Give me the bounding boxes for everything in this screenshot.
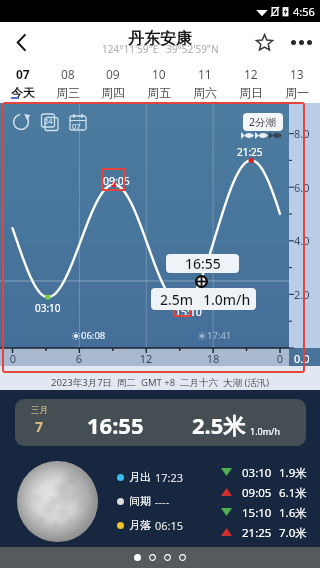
staticText: 1.0m/h (250, 425, 281, 437)
staticText: 2.0 (294, 287, 310, 302)
button[interactable]: 03:10 (221, 465, 307, 479)
staticText: 09 (106, 66, 120, 82)
staticText: 03:10 (242, 465, 272, 479)
staticText: 2023年3月7日 周二 GMT +8 二月十六 大潮 (活汛) (51, 376, 270, 389)
button[interactable] (179, 554, 186, 561)
button[interactable]: 三月 (15, 399, 306, 446)
staticText: 0.0 (294, 351, 310, 366)
button[interactable]: 16:55 (166, 254, 239, 273)
staticText: 周日 (239, 85, 263, 100)
button[interactable] (149, 554, 156, 561)
staticText: 10 (152, 66, 166, 82)
staticText: 周一 (285, 85, 309, 100)
staticText: 1.9米 (279, 465, 307, 479)
staticText: 11 (198, 66, 212, 82)
button[interactable]: 10 (136, 66, 182, 103)
staticText: 6.1米 (279, 485, 307, 499)
staticText: 06:08 (81, 329, 106, 342)
staticText: 0 (268, 351, 292, 366)
button[interactable] (164, 554, 171, 561)
staticText: 4:56 (293, 4, 315, 19)
staticText: 15:10 (175, 305, 202, 319)
staticText: 21:25 (237, 145, 263, 159)
staticText: 周三 (56, 85, 80, 100)
staticText: 16:55 (185, 254, 221, 273)
staticText: 2.5m (160, 290, 194, 309)
button[interactable]: 月落 (117, 518, 184, 532)
staticText: 周六 (193, 85, 217, 100)
button[interactable]: 08 (45, 66, 90, 103)
staticText: 07 (16, 66, 30, 82)
staticText: 06:15 (155, 518, 184, 532)
staticText: 08 (61, 66, 75, 82)
staticText: 丹东安康 (128, 29, 192, 49)
staticText: 2分潮 (249, 115, 277, 129)
staticText: 0 (1, 351, 25, 366)
staticText: 2.5米 (192, 410, 246, 440)
button[interactable]: Calendar (68, 112, 88, 132)
staticText: 1.6米 (279, 505, 307, 519)
staticText: 03:10 (35, 301, 61, 315)
staticText: 12 (244, 66, 258, 82)
staticText: 4.0 (294, 233, 310, 248)
staticText: 月落 (129, 518, 151, 532)
staticText: ---- (155, 494, 170, 508)
button[interactable]: Refresh (11, 112, 31, 132)
staticText: 13 (290, 66, 304, 82)
button[interactable]: 09 (90, 66, 136, 103)
button[interactable]: More options (282, 22, 320, 62)
staticText: 24 (44, 116, 53, 126)
staticText: 三月 (31, 405, 48, 416)
button[interactable]: 11 (182, 66, 228, 103)
staticText: 6.0 (294, 180, 310, 195)
button[interactable]: 24 hour view (40, 112, 60, 132)
button[interactable]: 15:10 (221, 505, 307, 519)
button[interactable]: 12 (228, 66, 274, 103)
staticText: 7 (35, 417, 44, 436)
staticText: 17:41 (207, 329, 232, 342)
staticText: 6 (67, 351, 91, 366)
staticText: 1.0m/h (203, 290, 251, 309)
staticText: 7.0米 (279, 525, 307, 539)
staticText: 16:55 (87, 410, 144, 440)
button[interactable]: 2分潮 (243, 113, 283, 131)
staticText: 周五 (147, 85, 171, 100)
staticText: 21:25 (242, 525, 272, 539)
button[interactable]: 07 (0, 66, 45, 103)
staticText: 间期 (129, 494, 151, 508)
button[interactable]: 13 (274, 66, 320, 103)
staticText: 09:05 (103, 174, 130, 188)
button[interactable]: 间期 (117, 494, 170, 508)
button[interactable]: 21:25 (221, 525, 307, 539)
staticText: 8.0 (294, 126, 310, 141)
staticText: 09:05 (242, 485, 272, 499)
button[interactable]: Favorite (246, 22, 282, 62)
button[interactable]: 09:05 (221, 485, 307, 499)
staticText: 124°11'59"E 39°52'59"N (102, 42, 219, 56)
staticText: 07 (72, 121, 81, 131)
staticText: 周四 (101, 85, 125, 100)
staticText: 今天 (11, 85, 35, 100)
button[interactable] (134, 554, 141, 561)
button[interactable]: Back (0, 22, 42, 62)
staticText: 15:10 (242, 505, 272, 519)
staticText: 月出 (129, 470, 151, 484)
button[interactable]: 2.5m (151, 288, 256, 310)
button[interactable]: 月出 (117, 470, 184, 484)
staticText: 18 (201, 351, 225, 366)
staticText: 12 (134, 351, 158, 366)
staticText: 17:23 (155, 470, 184, 484)
